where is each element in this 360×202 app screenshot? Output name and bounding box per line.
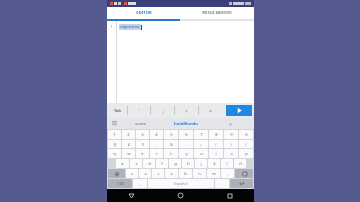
button[interactable]: e — [136, 149, 149, 158]
staticText: z — [131, 171, 133, 177]
button[interactable]: j — [195, 159, 207, 168]
button[interactable]: d — [143, 159, 155, 168]
button[interactable]: u — [194, 149, 208, 158]
button[interactable]: 4 — [150, 130, 163, 139]
staticText: c — [157, 171, 160, 177]
button[interactable]: 6 — [179, 130, 193, 139]
button[interactable]: 2 — [122, 130, 135, 139]
button[interactable]: a — [116, 159, 129, 168]
button[interactable]: Run — [226, 105, 252, 116]
button[interactable]: RESULTADO[S] — [180, 7, 254, 19]
staticText: j — [200, 161, 202, 167]
button[interactable]: holaMundo — [160, 118, 212, 129]
button[interactable]: v — [165, 169, 178, 178]
button[interactable]: @ — [108, 140, 121, 148]
button[interactable]: g — [169, 159, 181, 168]
staticText: - — [185, 142, 187, 147]
button[interactable]: < — [175, 103, 198, 118]
staticText: a — [121, 161, 124, 167]
button[interactable]: ñ — [234, 159, 246, 168]
staticText: t — [170, 151, 172, 157]
button[interactable]: p — [239, 149, 253, 158]
button[interactable]: Enter — [230, 179, 253, 188]
staticText: y — [229, 121, 232, 127]
staticText: 4 — [155, 132, 158, 138]
staticText: / — [245, 142, 247, 147]
button[interactable]: s — [130, 159, 142, 168]
button[interactable]: # — [122, 140, 135, 148]
button[interactable]: Shift — [108, 169, 125, 178]
staticText: holaMundo — [174, 121, 198, 127]
button[interactable]: + — [194, 140, 208, 148]
button[interactable]: z — [126, 169, 138, 178]
button[interactable]: c — [152, 169, 164, 178]
button[interactable]: y — [212, 118, 248, 129]
staticText: n — [198, 171, 201, 177]
staticText: r — [156, 151, 158, 157]
button[interactable]: i — [209, 149, 223, 158]
button[interactable]: 1 — [108, 130, 121, 139]
button[interactable]: h — [182, 159, 194, 168]
button[interactable]: 5 — [164, 130, 178, 139]
staticText: i — [215, 151, 217, 157]
staticText: ; — [162, 108, 164, 114]
button[interactable]: Keyboard menu — [107, 118, 121, 129]
staticText: 0 — [245, 132, 248, 138]
staticText: & — [170, 142, 173, 147]
button[interactable]: $ — [136, 140, 149, 148]
staticText: 3 — [141, 132, 144, 138]
staticText: . — [221, 181, 223, 187]
staticText: 1 — [113, 132, 116, 138]
staticText: e — [141, 151, 144, 157]
button[interactable]: b — [179, 169, 192, 178]
staticText: d — [148, 161, 151, 167]
button[interactable]: Español — [148, 179, 214, 188]
button[interactable]: f — [156, 159, 168, 168]
button[interactable]: n — [193, 169, 206, 178]
button[interactable]: q — [108, 149, 121, 158]
staticText: x — [144, 171, 147, 177]
button[interactable]: suma — [121, 118, 160, 129]
button[interactable]: , — [133, 179, 147, 188]
button[interactable]: 3 — [136, 130, 149, 139]
staticText: ) — [230, 142, 232, 147]
button[interactable]: Backspace — [235, 169, 253, 178]
button[interactable]: ) — [224, 140, 238, 148]
button[interactable]: m — [207, 169, 220, 178]
button[interactable]: o — [224, 149, 238, 158]
button[interactable]: k — [208, 159, 220, 168]
button[interactable]: Recents — [205, 189, 254, 202]
button[interactable]: 1 — [107, 21, 254, 103]
staticText: 1 — [110, 24, 113, 29]
button[interactable]: x — [139, 169, 151, 178]
button[interactable]: 9 — [224, 130, 238, 139]
button[interactable]: y — [179, 149, 193, 158]
button[interactable]: = — [199, 103, 222, 118]
button[interactable]: 7 — [194, 130, 208, 139]
button[interactable]: _ — [150, 140, 163, 148]
button[interactable]: t — [164, 149, 178, 158]
button[interactable]: w — [122, 149, 135, 158]
button[interactable]: EDITOR — [107, 7, 180, 19]
staticText: , — [227, 171, 229, 177]
button[interactable]: Tab — [107, 103, 127, 118]
staticText: s — [135, 161, 138, 167]
button[interactable]: Home — [156, 189, 205, 202]
staticText: _ — [156, 142, 158, 147]
button[interactable]: 8 — [209, 130, 223, 139]
button[interactable]: 123 — [108, 179, 132, 188]
button[interactable]: 0 — [239, 130, 253, 139]
button[interactable]: ( — [209, 140, 223, 148]
button[interactable]: & — [164, 140, 178, 148]
button[interactable]: , — [221, 169, 234, 178]
button[interactable]: / — [239, 140, 253, 148]
button[interactable]: r — [150, 149, 163, 158]
staticText: Tab — [114, 108, 121, 113]
button[interactable]: l — [221, 159, 233, 168]
button[interactable]: Back — [107, 189, 156, 202]
staticText: 7 — [200, 132, 203, 138]
